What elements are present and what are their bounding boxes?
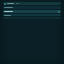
button[interactable]	[3, 6, 61, 9]
button[interactable]: Open	[3, 10, 61, 13]
button[interactable]: App icon	[3, 2, 61, 5]
button[interactable]	[3, 14, 61, 16]
other: App icon	[4, 3, 6, 5]
